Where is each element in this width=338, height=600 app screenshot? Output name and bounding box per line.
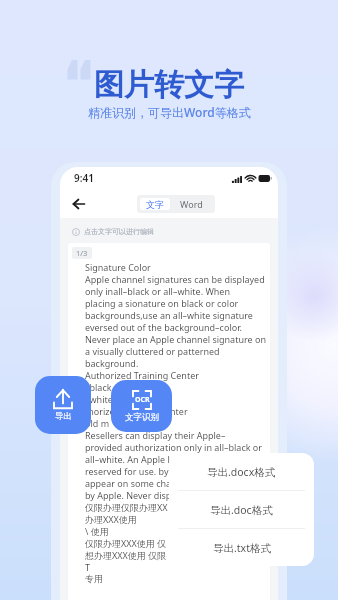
staticText: appear on some cha <box>85 477 172 489</box>
staticText: 9:41 <box>74 171 94 185</box>
staticText: 文字 <box>146 199 164 210</box>
button[interactable]: OCR <box>111 380 172 432</box>
staticText: a visually cluttered or patterned <box>85 345 220 357</box>
staticText: T <box>85 561 91 573</box>
button[interactable]: 导出.docx格式 <box>169 453 314 490</box>
button[interactable]: 文字 <box>140 198 170 210</box>
staticText: Apple channel signatures can be displaye… <box>85 273 265 285</box>
button[interactable]: 导出.txt格式 <box>169 529 314 566</box>
staticText: Authorized Training Center <box>85 369 199 381</box>
staticText: 办理XXX使用 <box>85 513 137 525</box>
staticText: 导出 <box>55 411 72 422</box>
staticText: all–white. An Apple l <box>85 453 170 465</box>
staticText: \ 使用 <box>85 525 109 537</box>
staticText: 图片转文字 <box>94 66 244 104</box>
staticText: backgrounds,use an all–white signature <box>85 309 253 321</box>
staticText: Word <box>180 198 203 210</box>
staticText: 精准识别，可导出Word等格式 <box>88 104 251 120</box>
staticText: 点击文字可以进行编辑 <box>84 227 154 236</box>
staticText: thorized Training Center <box>85 405 188 417</box>
staticText: only inall–black or all–white. When <box>85 285 231 297</box>
staticText: 想办理XXX使用 仅限 <box>85 549 167 561</box>
staticText: Signature Color <box>85 261 151 273</box>
staticText: –white <box>85 393 113 405</box>
staticText: 仅限办理XXX使用 仅 <box>85 537 167 549</box>
staticText: 1/3 <box>76 248 88 258</box>
staticText: provided authorization only in all–black… <box>85 441 263 453</box>
staticText: 导出.doc格式 <box>210 503 273 517</box>
button[interactable]: 导出 <box>35 376 91 434</box>
button[interactable]: 导出.doc格式 <box>169 491 314 528</box>
staticText: Resellers can display their Apple– <box>85 429 226 441</box>
button[interactable]: Word <box>170 198 212 210</box>
staticText: 导出.docx格式 <box>207 465 276 479</box>
staticText: old m <box>85 417 110 429</box>
staticText: reserved for use. by <box>85 465 169 477</box>
staticText: 导出.txt格式 <box>213 541 271 555</box>
staticText: OCR <box>135 395 150 405</box>
staticText: background. <box>85 357 139 369</box>
staticText: eversed out of the background–color. <box>85 321 242 333</box>
staticText: 仅限办理仅限办理XX <box>85 501 168 513</box>
staticText: placing a sionature on black or color <box>85 297 239 309</box>
staticText: by Apple. Never disp <box>85 489 172 501</box>
button[interactable]: Back <box>69 194 89 214</box>
staticText: 文字识别 <box>125 412 159 423</box>
staticText: 专用 <box>85 573 103 584</box>
staticText: –black <box>85 381 112 393</box>
staticText: Never place an Apple channel signature o… <box>85 333 266 345</box>
